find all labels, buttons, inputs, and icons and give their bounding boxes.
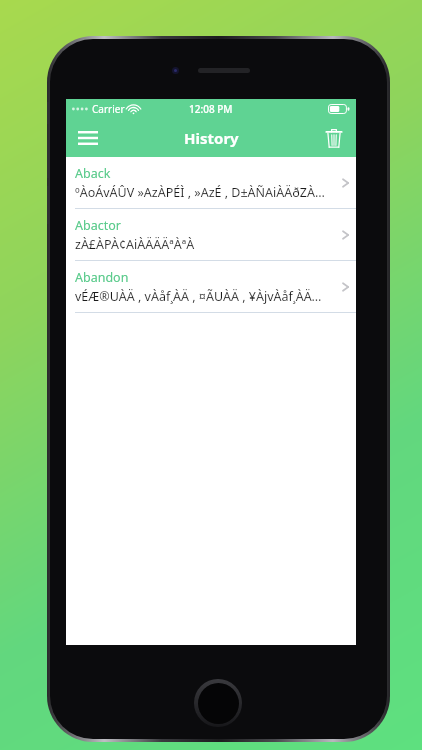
staticText: Aback [75, 165, 111, 182]
staticText: Carrier [92, 102, 125, 116]
button[interactable]: Abandon [66, 261, 356, 313]
button[interactable]: Abactor [66, 209, 356, 261]
button[interactable]: Aback [66, 157, 356, 209]
staticText: vÉÆ®UÀÄ , vÀåf¸ÀÄ , ¤ÃUÀÄ , ¥ÀjvÀåf¸ÀÄ… [75, 288, 322, 305]
staticText: ºÀoÁvÁÛV »AzÀPÉÌ , »AzÉ , D±ÀÑAiÀÄðZÀ… [75, 184, 325, 201]
staticText: zÀ£ÀPÀ¢AiÀÄÄÄªÀªÀ [75, 236, 195, 253]
button[interactable]: Delete history [312, 119, 356, 157]
staticText: Abandon [75, 269, 129, 286]
staticText: History [184, 128, 239, 148]
button[interactable]: Menu [66, 119, 110, 157]
staticText: Abactor [75, 217, 121, 234]
staticText: 12:08 PM [189, 102, 233, 116]
